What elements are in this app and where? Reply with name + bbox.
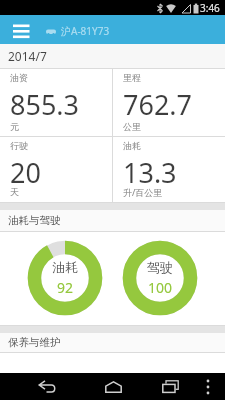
staticText: 保养与维护 bbox=[8, 336, 61, 349]
button[interactable]: 油资 bbox=[10, 72, 112, 136]
staticText: 升/百公里 bbox=[123, 186, 163, 197]
staticText: 天 bbox=[10, 186, 19, 197]
staticText: 855.3 bbox=[10, 86, 80, 123]
button[interactable]: 里程 bbox=[123, 72, 225, 136]
staticText: 13.3 bbox=[123, 154, 177, 191]
button[interactable]: 油耗 bbox=[27, 240, 103, 316]
button[interactable]: 油耗与驾驶 bbox=[0, 210, 225, 231]
staticText: 762.7 bbox=[123, 86, 193, 123]
button[interactable]: 驾驶 bbox=[122, 240, 198, 316]
button[interactable]: 保养与维护 bbox=[0, 333, 225, 352]
staticText: 油资 bbox=[10, 72, 28, 83]
staticText: 行驶 bbox=[10, 140, 28, 151]
button[interactable]: 油耗 bbox=[123, 140, 225, 202]
staticText: 元 bbox=[10, 121, 19, 132]
staticText: 2014/7 bbox=[8, 48, 47, 64]
staticText: 100 bbox=[148, 278, 173, 297]
staticText: 油耗与驾驶 bbox=[8, 214, 61, 227]
button[interactable] bbox=[0, 15, 42, 44]
staticText: 公里 bbox=[123, 121, 141, 132]
button[interactable] bbox=[95, 373, 131, 400]
button[interactable] bbox=[29, 373, 65, 400]
staticText: 3:46 bbox=[200, 1, 220, 15]
staticText: 驾驶 bbox=[147, 259, 173, 275]
staticText: 20 bbox=[10, 154, 41, 191]
staticText: 油耗 bbox=[123, 140, 141, 151]
button[interactable] bbox=[201, 373, 215, 400]
staticText: 里程 bbox=[123, 72, 141, 83]
button[interactable]: 2014/7 bbox=[0, 44, 225, 68]
button[interactable]: 行驶 bbox=[10, 140, 112, 202]
button[interactable] bbox=[152, 373, 188, 400]
staticText: 沪A-81Y73 bbox=[61, 24, 110, 38]
staticText: 92 bbox=[57, 278, 74, 297]
button[interactable]: 沪A-81Y73 bbox=[46, 24, 110, 38]
staticText: 油耗 bbox=[52, 259, 78, 275]
